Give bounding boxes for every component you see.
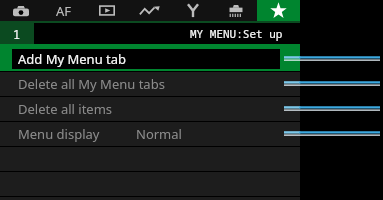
staticText: Add My Menu tab [18, 50, 127, 68]
button[interactable]: Custom functions menu [214, 0, 257, 21]
staticText: MY MENU:Set up [190, 26, 283, 41]
button[interactable]: Playback menu [85, 0, 128, 21]
button[interactable]: My Menu [257, 0, 300, 21]
button[interactable]: Autofocus menu [42, 0, 85, 21]
staticText: Menu display [18, 125, 100, 143]
button[interactable]: Page 1 [0, 23, 34, 44]
staticText: AF [56, 2, 72, 20]
staticText: Delete all My Menu tabs [18, 75, 165, 93]
button[interactable]: Delete all My Menu tabs [0, 72, 383, 96]
staticText: Normal [136, 125, 182, 143]
staticText: 1 [13, 26, 21, 42]
button[interactable]: Shooting menu [0, 0, 42, 21]
staticText: Delete all items [18, 100, 113, 118]
button[interactable]: Delete all items [0, 97, 383, 121]
button[interactable]: Set up menu [171, 0, 214, 21]
button[interactable]: Wireless menu [128, 0, 171, 21]
button[interactable]: Menu display [0, 122, 383, 146]
button[interactable]: Add My Menu tab [0, 47, 383, 71]
